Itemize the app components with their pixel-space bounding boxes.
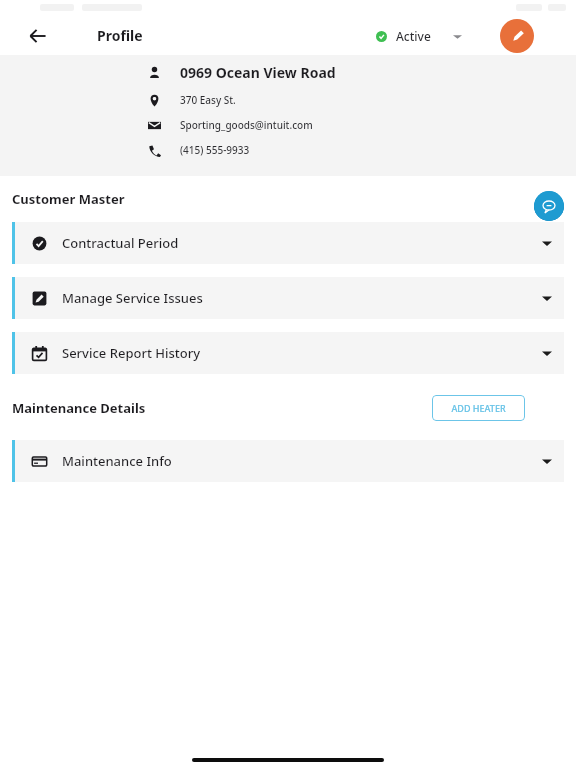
staticText: Contractual Period: [62, 234, 179, 252]
staticText: Customer Master: [12, 190, 125, 208]
button[interactable]: Active: [376, 28, 462, 44]
staticText: Active: [396, 28, 431, 44]
button[interactable]: Chat: [534, 191, 564, 221]
staticText: Maintenance Info: [62, 452, 172, 470]
staticText: Profile: [97, 26, 143, 45]
staticText: 370 Easy St.: [180, 93, 236, 107]
button[interactable]: Maintenance Info: [12, 440, 564, 482]
staticText: Service Report History: [62, 344, 201, 362]
button[interactable]: Back: [24, 22, 52, 50]
staticText: ADD HEATER: [451, 402, 506, 414]
staticText: Sporting_goods@intuit.com: [180, 118, 313, 132]
staticText: 0969 Ocean View Road: [180, 63, 336, 82]
button[interactable]: Contractual Period: [12, 222, 564, 264]
staticText: Maintenance Details: [12, 399, 146, 417]
button[interactable]: Edit: [500, 19, 534, 53]
staticText: Manage Service Issues: [62, 289, 203, 307]
button[interactable]: ADD HEATER: [432, 395, 525, 421]
staticText: (415) 555-9933: [180, 143, 250, 157]
button[interactable]: Manage Service Issues: [12, 277, 564, 319]
button[interactable]: Service Report History: [12, 332, 564, 374]
